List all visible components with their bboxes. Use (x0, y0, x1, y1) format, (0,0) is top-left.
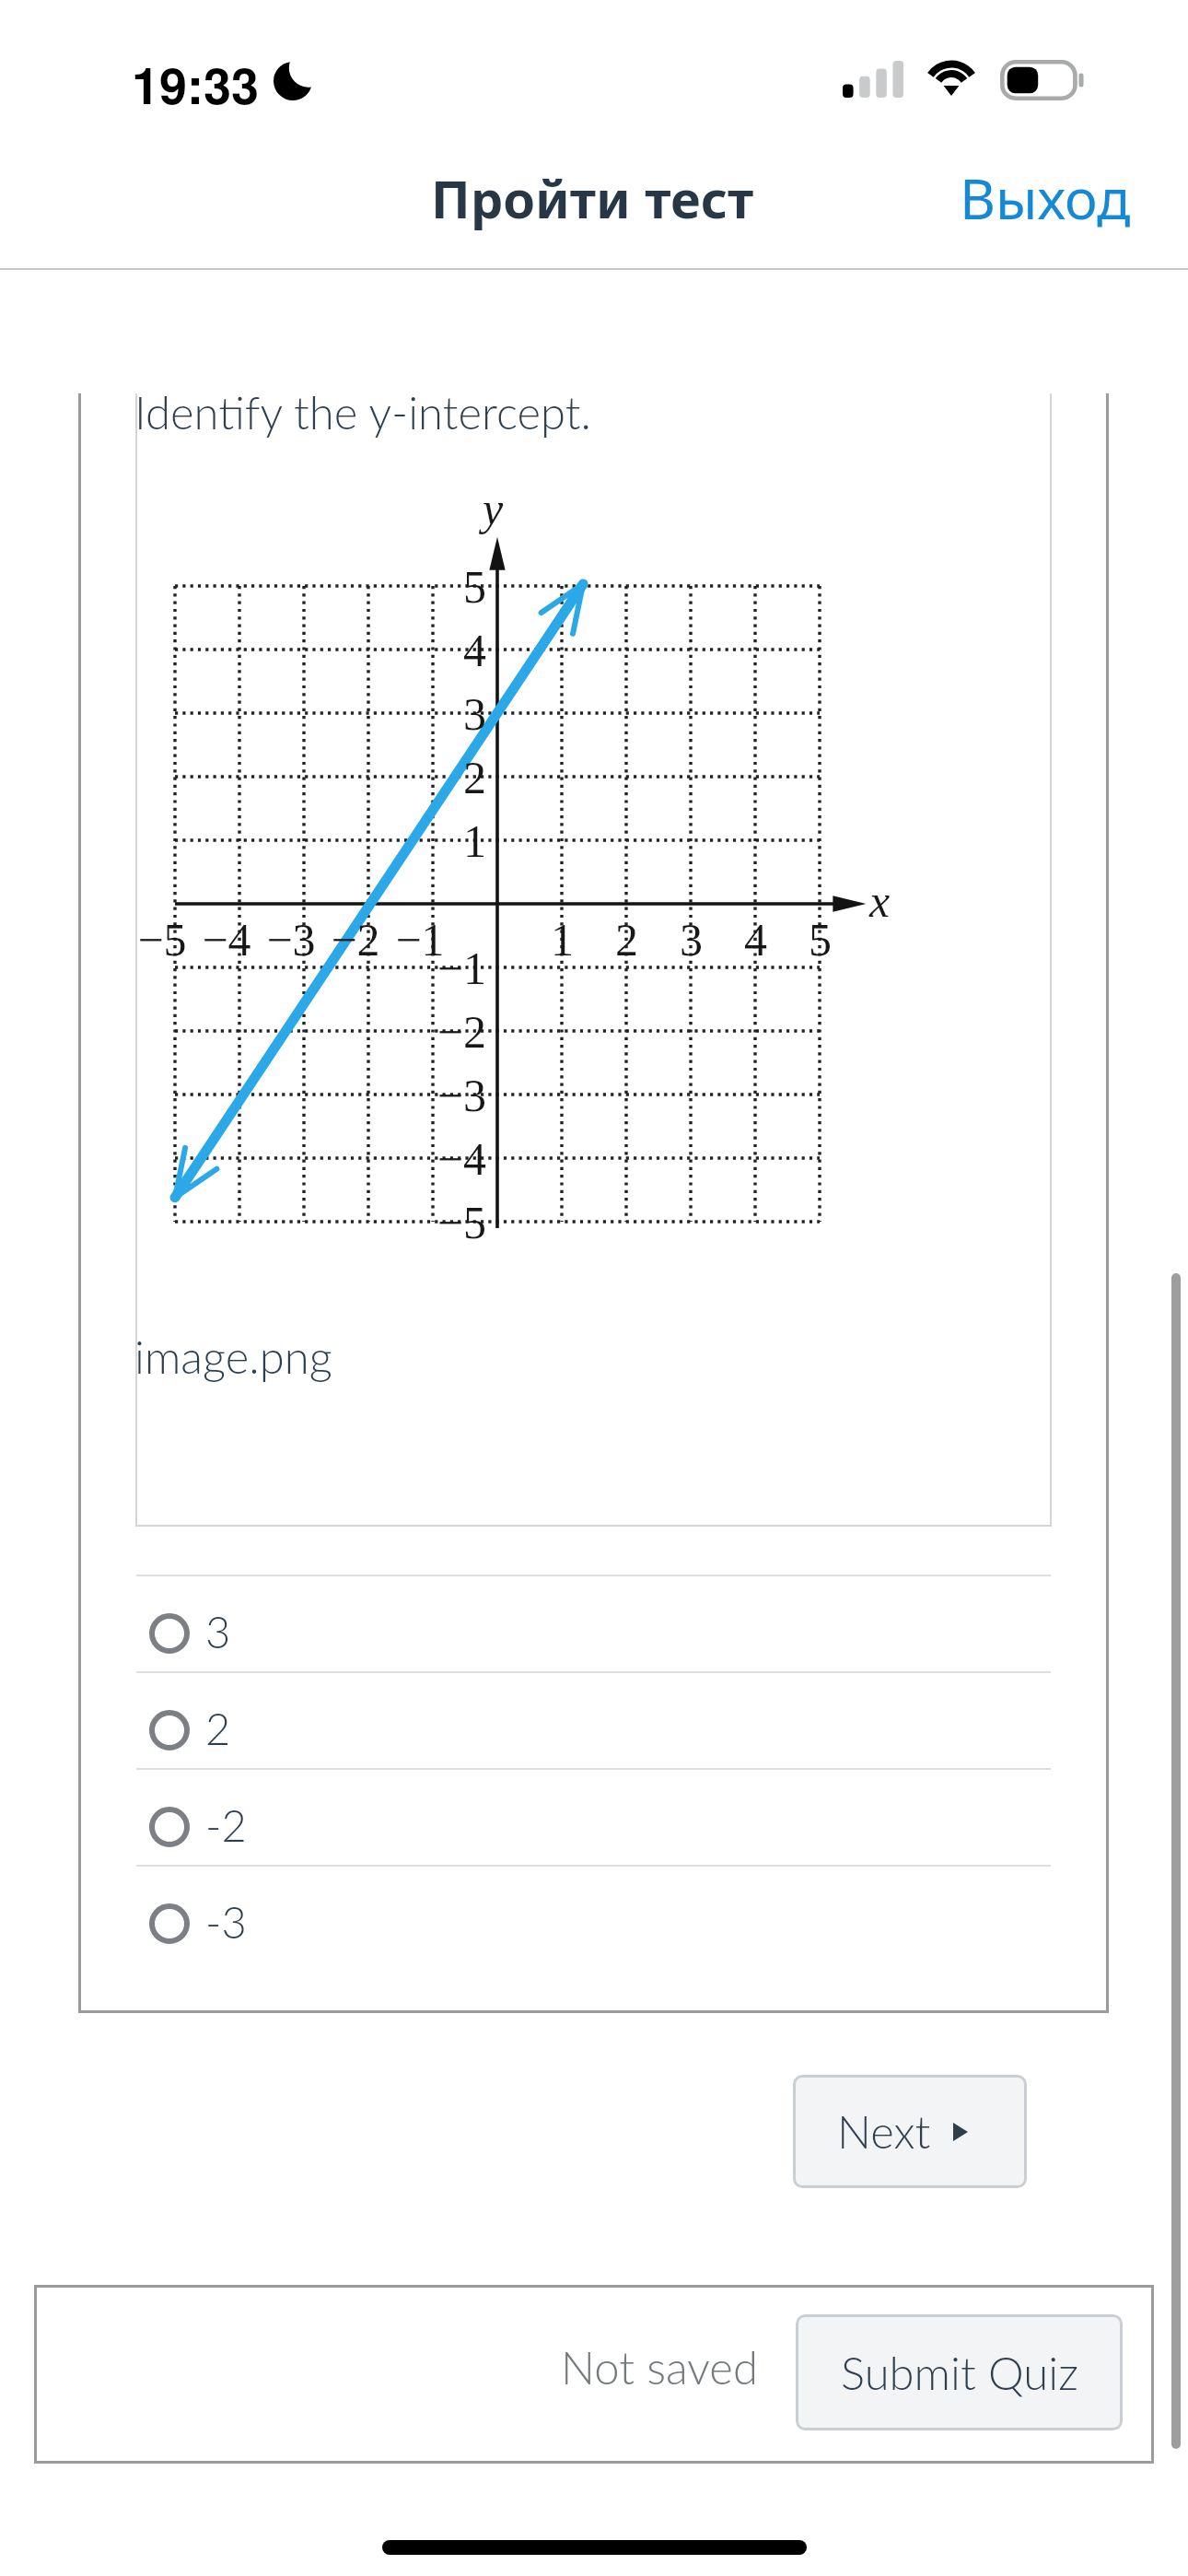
staticText: Выход (960, 160, 1131, 236)
button[interactable]: 2 (136, 1673, 1051, 1768)
staticText: 1 (551, 914, 574, 965)
staticText: 3 (463, 688, 486, 739)
staticText: 2 (615, 914, 638, 965)
staticText: 2 (463, 752, 486, 802)
staticText: x (869, 875, 891, 926)
staticText: 3 (680, 914, 703, 965)
staticText: −3 (437, 1070, 486, 1120)
staticText: -2 (205, 1799, 247, 1851)
staticText: 4 (744, 914, 767, 965)
button[interactable]: 3 (136, 1576, 1051, 1671)
staticText: −4 (202, 914, 251, 965)
staticText: −5 (437, 1197, 486, 1247)
staticText: y (483, 483, 504, 533)
staticText: -3 (205, 1896, 247, 1948)
staticText: 3 (205, 1606, 231, 1657)
staticText: 19:33 (132, 48, 260, 119)
staticText: Not saved (561, 2340, 758, 2395)
button[interactable]: Submit Quiz (796, 2314, 1123, 2430)
staticText: image.png (134, 1329, 332, 1384)
staticText: −3 (266, 914, 316, 965)
staticText: 5 (809, 914, 832, 965)
staticText: Identify the y-intercept. (134, 385, 592, 439)
staticText: −1 (395, 914, 445, 965)
button[interactable]: Next (793, 2075, 1027, 2188)
staticText: −2 (437, 1006, 486, 1057)
staticText: Next (837, 2104, 931, 2159)
staticText: 2 (205, 1703, 231, 1754)
staticText: 1 (463, 815, 486, 866)
staticText: −4 (437, 1133, 486, 1184)
staticText: 5 (463, 561, 486, 612)
staticText: −1 (437, 943, 486, 993)
staticText: −2 (331, 914, 380, 965)
button[interactable]: -3 (136, 1867, 1051, 1961)
button[interactable]: -2 (136, 1770, 1051, 1865)
staticText: Submit Quiz (841, 2346, 1078, 2400)
staticText: Пройти тест (431, 160, 754, 234)
button[interactable]: Выход (939, 147, 1151, 249)
staticText: 4 (463, 625, 486, 675)
staticText: −5 (137, 914, 187, 965)
